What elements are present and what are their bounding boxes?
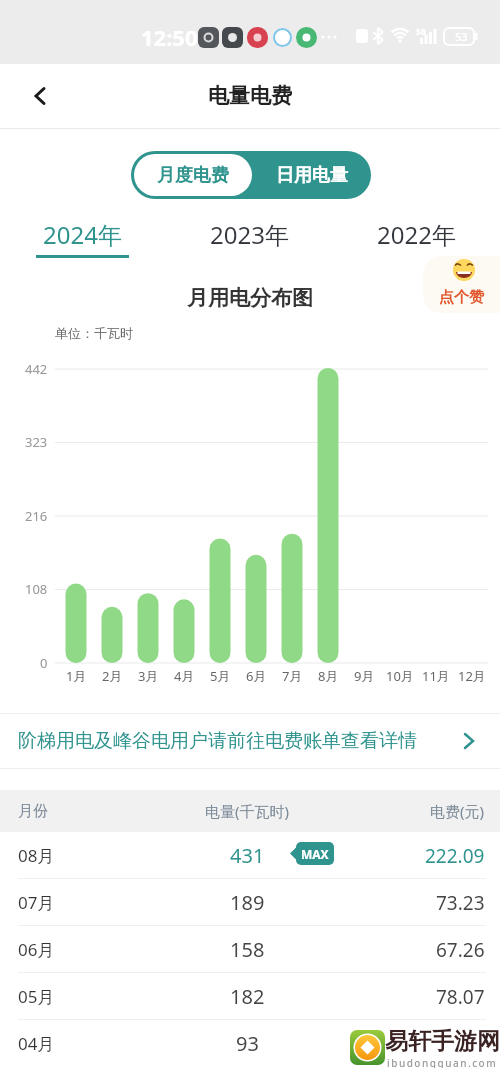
staticText: 158 [230,936,265,963]
staticText: 单位：千瓦时 [55,325,133,341]
button[interactable]: 07月 [0,879,500,926]
staticText: 53 [455,29,468,44]
staticText: 12月 [458,667,486,685]
staticText: 93 [236,1030,259,1057]
button[interactable]: 2023年 [183,218,316,264]
button[interactable]: 日用电量 [252,151,371,199]
staticText: 1月 [66,667,87,685]
button[interactable]: 06月 [0,926,500,973]
button[interactable]: 05月 [0,973,500,1020]
staticText: 3月 [138,667,159,685]
staticText: 2月 [102,667,123,685]
staticText: MAX [301,846,329,862]
staticText: 78.07 [436,984,485,1010]
staticText: 7月 [282,667,303,685]
staticText: ibudongguan.com [387,1056,498,1068]
staticText: 07月 [18,891,55,914]
staticText: 323 [25,433,48,451]
staticText: 182 [230,983,265,1010]
staticText: 日用电量 [276,164,348,187]
staticText: 10月 [386,667,414,685]
staticText: 6月 [246,667,267,685]
button[interactable]: 04月 [0,1020,500,1067]
staticText: 月度电费 [157,164,229,187]
staticText: 电量(千瓦时) [205,801,290,821]
staticText: 2022年 [377,218,456,251]
staticText: 222.09 [425,843,485,869]
staticText: 0 [40,654,48,672]
button[interactable]: 2022年 [350,218,483,264]
staticText: 8月 [318,667,339,685]
staticText: 189 [230,889,265,916]
staticText: 电费(元) [430,801,485,821]
staticText: 73.23 [436,890,485,916]
staticText: 108 [25,580,48,598]
button[interactable]: 08月 [0,832,500,879]
staticText: 06月 [18,938,55,961]
staticText: 易轩手游网 [385,1027,500,1056]
staticText: 月份 [18,802,48,821]
staticText: 431 [230,842,265,869]
staticText: 08月 [18,844,55,867]
staticText: 9月 [354,667,375,685]
button[interactable] [20,76,60,116]
staticText: 67.26 [436,937,485,963]
button[interactable]: 点个赞 [423,256,500,313]
button[interactable]: 月度电费 [134,154,252,196]
staticText: 阶梯用电及峰谷电用户请前往电费账单查看详情 [18,729,417,753]
staticText: 11月 [422,667,450,685]
staticText: 216 [25,507,48,525]
staticText: 2023年 [210,218,289,251]
staticText: 04月 [18,1032,55,1055]
button[interactable]: 阶梯用电及峰谷电用户请前往电费账单查看详情 [0,714,500,768]
staticText: 442 [25,360,48,378]
staticText: 5月 [210,667,231,685]
staticText: 05月 [18,985,55,1008]
staticText: 电量电费 [208,83,292,109]
staticText: 点个赞 [439,288,484,307]
staticText: 12:50 [141,22,198,50]
button[interactable]: 2024年 [16,218,149,264]
staticText: 2024年 [43,218,122,251]
staticText: 月用电分布图 [187,285,313,311]
staticText: 5G [416,26,427,36]
staticText: 4月 [174,667,195,685]
